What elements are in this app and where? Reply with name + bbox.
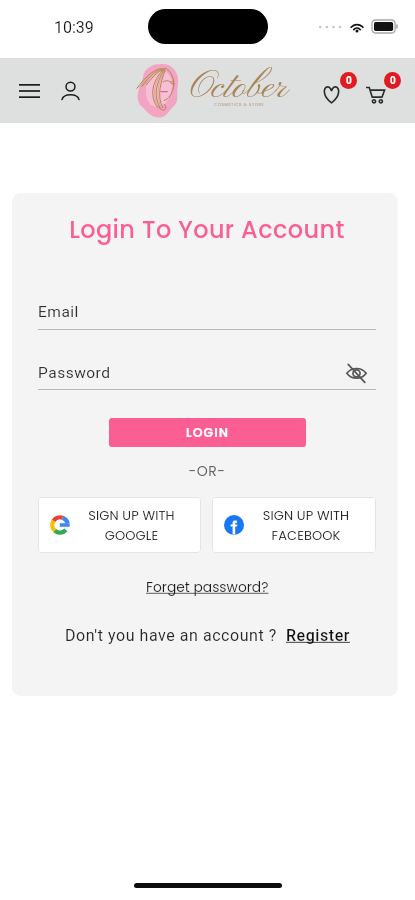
staticText: 0 <box>390 75 396 87</box>
staticText: Don't you have an account ? <box>65 626 286 645</box>
staticText: October <box>190 63 288 112</box>
button[interactable]: Password <box>38 364 376 390</box>
button[interactable]: Email <box>38 303 376 330</box>
staticText: 10:39 <box>54 18 94 37</box>
button[interactable]: Favorites <box>319 71 359 111</box>
button[interactable]: Account <box>54 75 86 107</box>
staticText: COSMETICS & STORE <box>214 102 265 108</box>
staticText: Login To Your Account <box>38 213 376 247</box>
button[interactable]: SIGN UP WITH GOOGLE <box>38 497 201 553</box>
staticText: SIGN UP WITH FACEBOOK <box>244 506 368 545</box>
staticText: Password <box>38 364 353 382</box>
staticText: LOGIN <box>186 424 229 441</box>
button[interactable]: SIGN UP WITH FACEBOOK <box>212 497 376 553</box>
staticText: SIGN UP WITH GOOGLE <box>70 506 193 545</box>
staticText: -OR- <box>38 461 376 481</box>
button[interactable]: Register <box>286 626 350 645</box>
staticText: 0 <box>346 75 352 87</box>
staticText: Email <box>38 303 376 321</box>
button[interactable]: Menu <box>13 75 45 107</box>
button[interactable]: Forget password? <box>146 578 269 597</box>
button[interactable]: Cart <box>363 71 403 111</box>
button[interactable]: LOGIN <box>109 418 306 447</box>
